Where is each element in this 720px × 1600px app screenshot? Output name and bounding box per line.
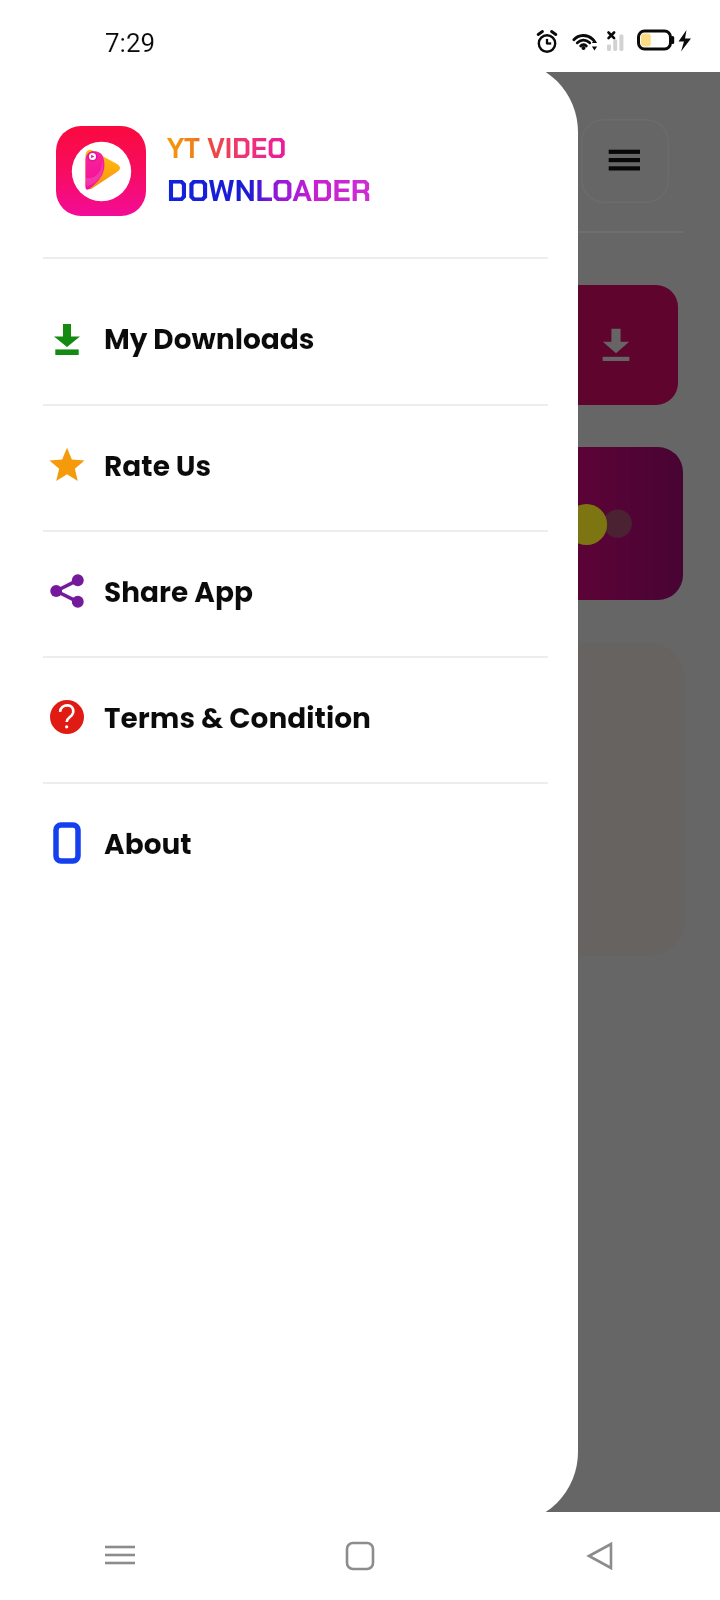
button[interactable] bbox=[545, 447, 683, 600]
button[interactable]: Terms & Condition bbox=[0, 657, 578, 783]
staticText: Share App bbox=[104, 573, 253, 612]
button[interactable] bbox=[545, 643, 685, 956]
staticText: 7:29 bbox=[105, 28, 156, 58]
button[interactable]: My Downloads bbox=[0, 258, 578, 405]
button[interactable]: Recents bbox=[0, 1512, 240, 1600]
staticText: Terms & Condition bbox=[104, 699, 371, 738]
button[interactable]: Home bbox=[240, 1512, 480, 1600]
button[interactable]: Back bbox=[480, 1512, 720, 1600]
staticText: YT VIDEO bbox=[167, 131, 287, 166]
button[interactable]: Rate Us bbox=[0, 405, 578, 531]
staticText: About bbox=[104, 825, 192, 864]
staticText: Rate Us bbox=[104, 447, 212, 486]
button[interactable]: Open navigation menu bbox=[581, 119, 669, 203]
staticText: DOWNLOADER bbox=[167, 171, 371, 210]
button[interactable] bbox=[545, 285, 678, 405]
button[interactable]: Share App bbox=[0, 531, 578, 657]
button[interactable]: About bbox=[0, 783, 578, 909]
staticText: My Downloads bbox=[104, 320, 315, 359]
